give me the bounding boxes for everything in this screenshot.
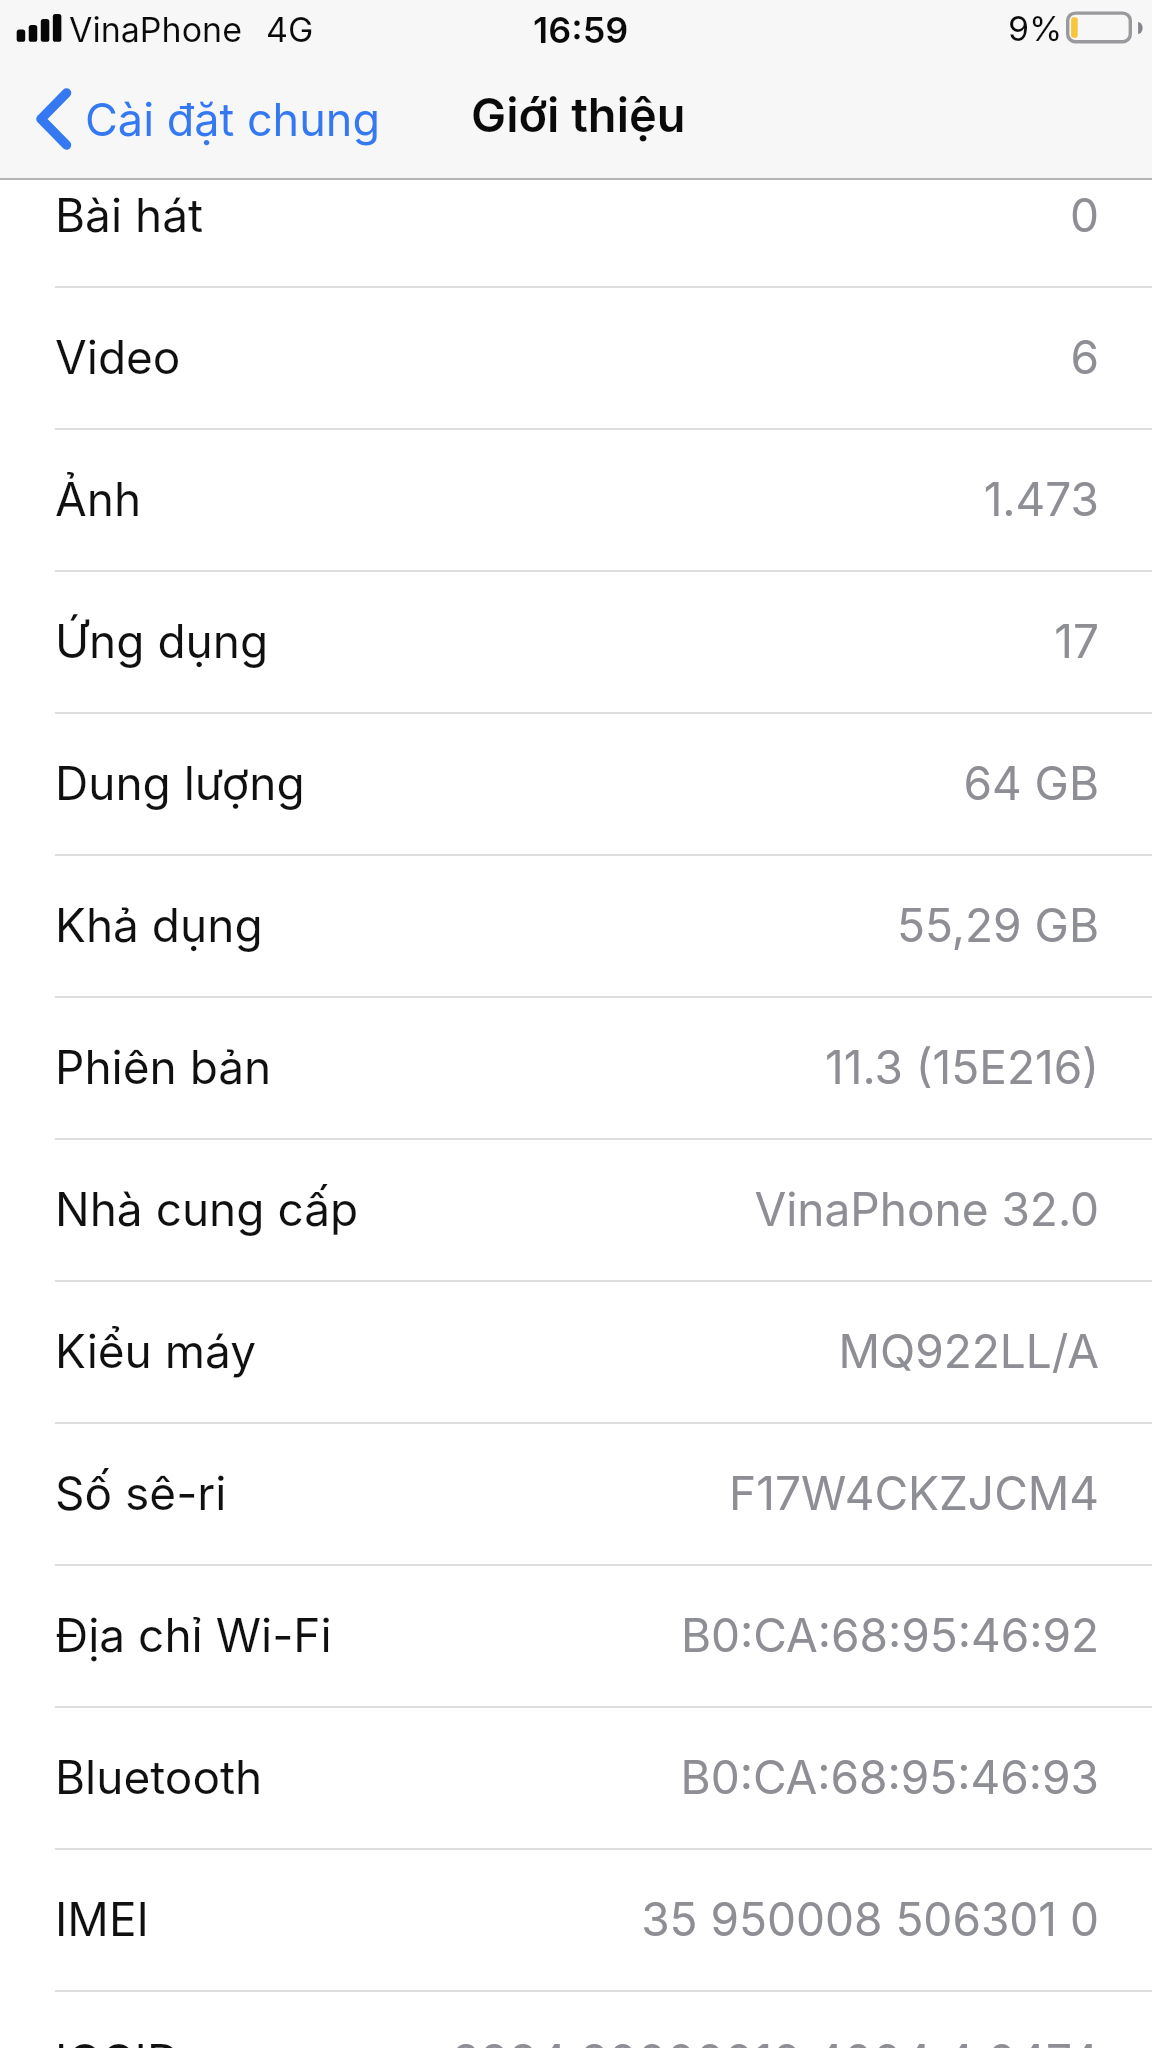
staticText: ICCID (55, 2033, 181, 2048)
staticText: Kiểu máy (55, 1323, 257, 1379)
other: Back (36, 88, 71, 150)
staticText: 16:59 (533, 8, 629, 52)
staticText: 9% (1008, 8, 1063, 49)
staticText: 4G (266, 9, 314, 50)
button[interactable]: ICCID (0, 1992, 1152, 2048)
button[interactable]: Dung lượng (0, 714, 1152, 856)
button[interactable]: Bluetooth (0, 1708, 1152, 1850)
staticText: Video (55, 329, 181, 385)
staticText: Ứng dụng (55, 613, 269, 669)
staticText: Bluetooth (55, 1749, 263, 1805)
staticText: Ảnh (55, 471, 142, 527)
staticText: 55,29 GB (271, 897, 1099, 953)
staticText: Địa chỉ Wi-Fi (55, 1607, 332, 1663)
staticText: Bài hát (55, 187, 204, 243)
button[interactable]: Video (0, 288, 1152, 430)
staticText: 0 (212, 187, 1099, 243)
button[interactable]: Ảnh (0, 430, 1152, 572)
staticText: Nhà cung cấp (55, 1181, 359, 1237)
staticText: 64 GB (313, 755, 1099, 811)
button[interactable]: Phiên bản (0, 998, 1152, 1140)
button[interactable]: Ứng dụng (0, 572, 1152, 714)
staticText: F17W4CKZJCM4 (235, 1465, 1099, 1521)
staticText: 8984 80000010 4004 4 0474 (189, 2033, 1099, 2048)
staticText: 1.473 (150, 471, 1099, 527)
button[interactable]: Số sê-ri (0, 1424, 1152, 1566)
staticText: Cài đặt chung (85, 92, 381, 146)
button[interactable]: Kiểu máy (0, 1282, 1152, 1424)
button[interactable]: IMEI (0, 1850, 1152, 1992)
staticText: 11.3 (15E216) (280, 1039, 1099, 1095)
button[interactable]: Địa chỉ Wi-Fi (0, 1566, 1152, 1708)
staticText: Khả dụng (55, 897, 263, 953)
staticText: B0:CA:68:95:46:92 (340, 1607, 1099, 1663)
staticText: IMEI (55, 1891, 149, 1947)
staticText: Số sê-ri (55, 1465, 227, 1521)
button[interactable]: Khả dụng (0, 856, 1152, 998)
staticText: 35 950008 506301 0 (157, 1891, 1099, 1947)
staticText: Phiên bản (55, 1039, 272, 1095)
button[interactable]: Nhà cung cấp (0, 1140, 1152, 1282)
staticText: VinaPhone (69, 9, 242, 50)
staticText: Dung lượng (55, 755, 305, 811)
button[interactable]: Bài hát (0, 146, 1152, 288)
staticText: 6 (189, 329, 1099, 385)
button[interactable]: Back (0, 72, 405, 166)
staticText: MQ922LL/A (265, 1323, 1099, 1379)
staticText: VinaPhone 32.0 (367, 1181, 1099, 1237)
staticText: 17 (277, 613, 1099, 669)
staticText: Giới thiệu (471, 86, 686, 143)
staticText: B0:CA:68:95:46:93 (271, 1749, 1099, 1805)
